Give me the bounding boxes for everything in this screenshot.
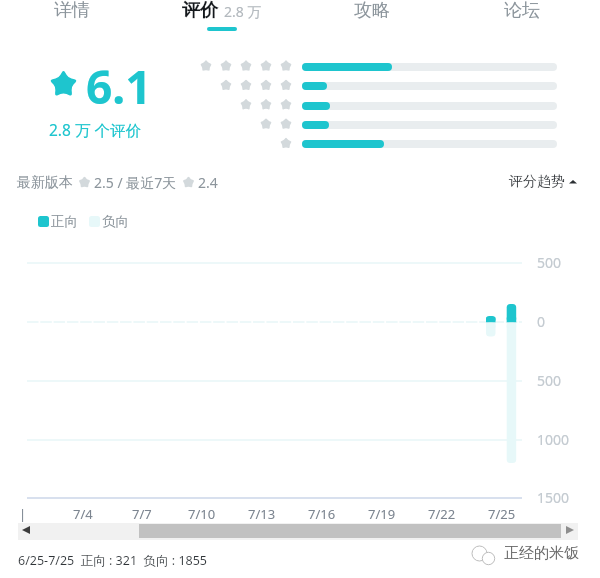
staticText: 详情	[54, 0, 90, 22]
staticText: 正向	[51, 213, 78, 230]
button[interactable]: 论坛	[447, 0, 597, 27]
staticText: 7/10	[188, 505, 216, 523]
staticText: |	[19, 505, 27, 523]
staticText: 论坛	[504, 0, 540, 22]
staticText: 7/19	[368, 505, 396, 523]
staticText: 6.1	[86, 55, 152, 118]
staticText: 7/25	[488, 505, 516, 523]
staticText: 7/16	[308, 505, 336, 523]
staticText: 2.4	[198, 173, 218, 192]
staticText: 7/13	[248, 505, 276, 523]
staticText: 7/4	[73, 505, 93, 523]
staticText: 攻略	[354, 0, 390, 22]
button[interactable]: 攻略	[297, 0, 447, 27]
staticText: 6/25-7/25 正向 : 321 负向 : 1855	[18, 552, 207, 569]
staticText: 2.5 / 最近7天	[94, 173, 177, 192]
staticText: 7/22	[428, 505, 456, 523]
staticText: 500	[537, 371, 562, 390]
button[interactable]: 评价	[147, 0, 297, 31]
staticText: 500	[537, 253, 562, 272]
staticText: 0	[537, 312, 546, 331]
staticText: 最新版本	[17, 174, 73, 192]
staticText: 评价	[182, 0, 218, 22]
staticText: 正经的米饭	[504, 544, 579, 563]
staticText: 1000	[537, 430, 570, 449]
button[interactable]: 评分趋势	[509, 173, 577, 191]
button[interactable]: WeChat	[470, 544, 500, 574]
staticText: 2.8 万 个评价	[49, 119, 141, 140]
staticText: 负向	[102, 213, 129, 230]
button[interactable]: Horizontal scrollbar	[18, 523, 578, 540]
staticText: 2.8 万	[224, 2, 262, 21]
staticText: 7/7	[132, 505, 152, 523]
staticText: 1500	[537, 488, 570, 507]
button[interactable]: 详情	[0, 0, 147, 27]
staticText: 评分趋势	[509, 173, 565, 191]
